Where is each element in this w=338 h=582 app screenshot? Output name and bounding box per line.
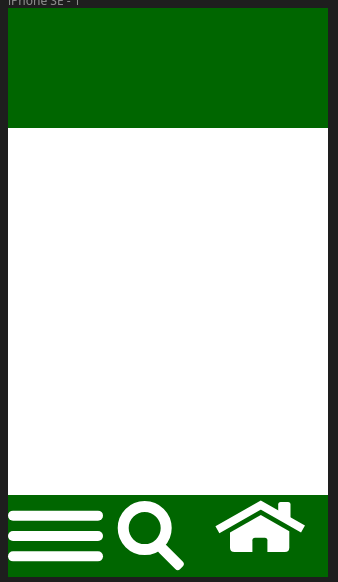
button[interactable]: Menu (8, 495, 111, 577)
button[interactable]: Home (201, 495, 328, 577)
button[interactable]: Search (111, 495, 201, 577)
staticText: iPhone SE - 1 (8, 0, 81, 8)
